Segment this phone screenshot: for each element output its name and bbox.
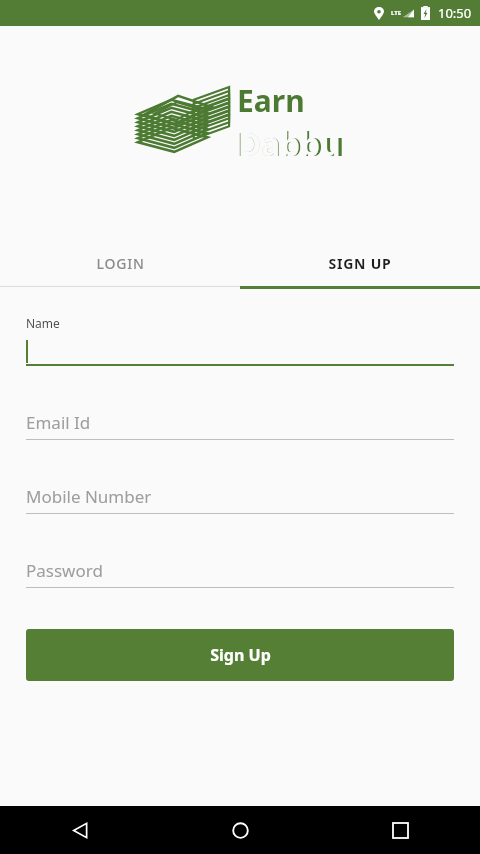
staticText: Email Id [26,411,91,434]
staticText: Dabbu [237,121,345,166]
button[interactable]: LOGIN [0,240,240,286]
staticText: 10:50 [438,4,472,22]
staticText: Mobile Number [26,485,152,508]
staticText: Sign Up [210,644,271,666]
staticText: LTE [391,9,402,17]
button[interactable]: Recent apps [376,806,424,854]
button[interactable]: Email Id [26,409,454,440]
staticText: Dabbu [238,122,341,165]
button[interactable]: Mobile Number [26,483,454,514]
button[interactable]: Name [26,315,454,366]
button[interactable]: Sign Up [26,629,454,681]
staticText: SIGN UP [328,254,392,273]
staticText: Password [26,559,103,582]
button[interactable]: Home [216,806,264,854]
staticText: Name [26,315,60,331]
staticText: Earn [237,80,305,121]
staticText: LOGIN [96,254,145,273]
button[interactable]: Back [56,806,104,854]
button[interactable]: SIGN UP [240,240,480,286]
button[interactable]: Password [26,557,454,588]
